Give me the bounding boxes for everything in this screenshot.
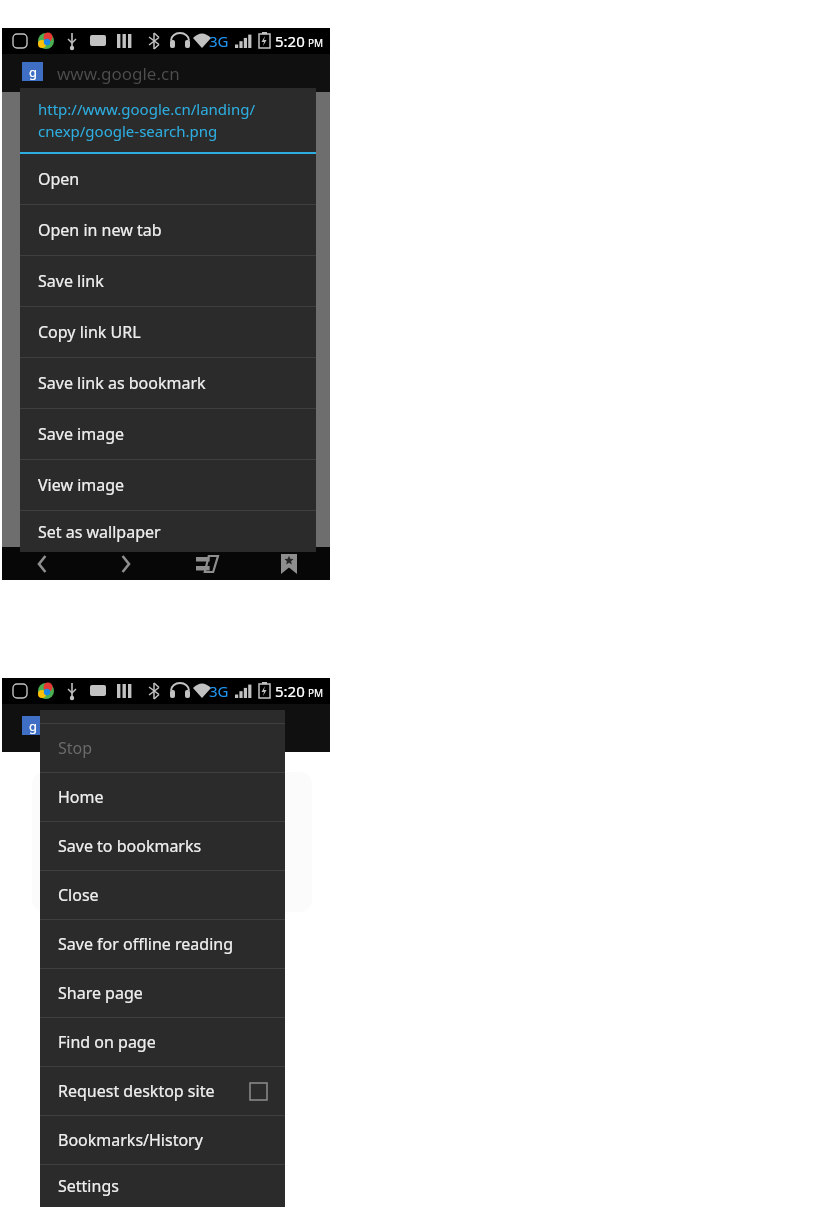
staticText: Settings — [58, 1175, 267, 1197]
staticText: Share page — [58, 982, 267, 1004]
button[interactable]: Home — [40, 773, 285, 821]
staticText: View image — [38, 474, 298, 496]
button[interactable]: Save image — [20, 409, 316, 459]
staticText: Open — [38, 168, 298, 190]
button[interactable]: Back — [13, 547, 73, 580]
staticText: Close — [58, 884, 267, 906]
button[interactable]: Save link as bookmark — [20, 358, 316, 408]
staticText: Stop — [58, 737, 267, 759]
button[interactable]: Forward — [95, 547, 155, 580]
button[interactable]: View image — [20, 460, 316, 510]
staticText: Bookmarks/History — [58, 1129, 267, 1151]
button[interactable]: Close — [40, 871, 285, 919]
staticText: Save link — [38, 270, 298, 292]
button[interactable]: Share page — [40, 969, 285, 1017]
button[interactable]: Save link — [20, 256, 316, 306]
staticText: www.google.cn — [57, 62, 180, 85]
staticText: Save for offline reading — [58, 933, 267, 955]
staticText: Find on page — [58, 1031, 267, 1053]
button[interactable]: Bookmarks — [259, 547, 319, 580]
button[interactable]: Save to bookmarks — [40, 822, 285, 870]
button[interactable]: Settings — [40, 1165, 285, 1207]
button[interactable]: Save for offline reading — [40, 920, 285, 968]
staticText: Set as wallpaper — [38, 521, 298, 543]
staticText: PM — [308, 686, 324, 700]
button[interactable]: Copy link URL — [20, 307, 316, 357]
button[interactable]: Open in new tab — [20, 205, 316, 255]
button[interactable]: Stop — [40, 724, 285, 772]
button[interactable]: Tabs — [177, 547, 237, 580]
staticText: PM — [308, 36, 324, 50]
staticText: 5:20 — [275, 31, 305, 51]
staticText: g — [29, 63, 37, 81]
button[interactable]: Request desktop site — [40, 1067, 285, 1115]
staticText: Save link as bookmark — [38, 372, 298, 394]
button[interactable]: Set as wallpaper — [20, 511, 316, 552]
staticText: Home — [58, 786, 267, 808]
staticText: 3G — [209, 681, 229, 701]
button[interactable]: Find on page — [40, 1018, 285, 1066]
button[interactable]: Bookmarks/History — [40, 1116, 285, 1164]
staticText: Save to bookmarks — [58, 835, 267, 857]
staticText: http://www.google.cn/landing/ — [38, 99, 256, 119]
staticText: g — [29, 717, 37, 735]
staticText: 3G — [209, 31, 229, 51]
staticText: Open in new tab — [38, 219, 298, 241]
staticText: Copy link URL — [38, 321, 298, 343]
staticText: cnexp/google-search.png — [38, 121, 218, 141]
staticText: Request desktop site — [58, 1080, 250, 1102]
staticText: 5:20 — [275, 681, 305, 701]
button[interactable]: Open — [20, 154, 316, 204]
staticText: Save image — [38, 423, 298, 445]
